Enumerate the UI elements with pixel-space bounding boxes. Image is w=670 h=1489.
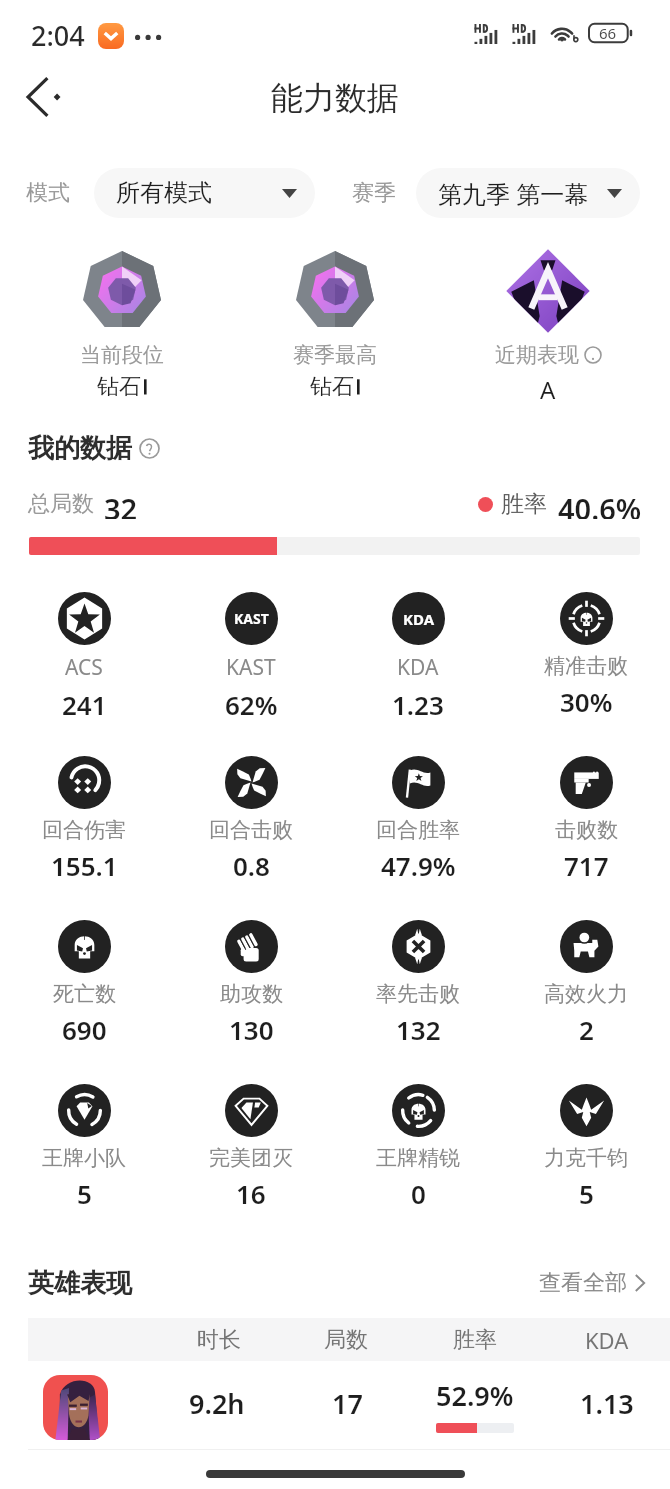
staticText: 16 xyxy=(236,1176,266,1211)
staticText: 查看全部 xyxy=(539,1269,627,1297)
staticText: 30% xyxy=(560,684,613,719)
staticText: 胜率 xyxy=(453,1326,497,1354)
staticText: 5 xyxy=(579,1176,594,1211)
staticText: 完美团灭 xyxy=(209,1145,293,1171)
staticText: 总局数 xyxy=(28,490,94,518)
staticText: 助攻数 xyxy=(220,981,283,1007)
staticText: 钻石 xyxy=(97,373,141,401)
staticText: 王牌小队 xyxy=(42,1145,126,1171)
staticText: 时长 xyxy=(197,1326,241,1354)
staticText: 1.23 xyxy=(392,687,444,722)
button[interactable]: 高效火力 xyxy=(503,920,669,1047)
staticText: 英雄表现 xyxy=(28,1267,132,1300)
button[interactable]: 助攻数 xyxy=(168,920,334,1047)
button[interactable]: 回合伤害 xyxy=(1,756,167,883)
button[interactable]: 所有模式 xyxy=(94,168,315,218)
button[interactable]: 王牌精锐 xyxy=(335,1084,501,1211)
staticText: 当前段位 xyxy=(80,342,164,368)
staticText: 0.8 xyxy=(233,848,270,883)
staticText: 力克千钧 xyxy=(544,1145,628,1171)
button[interactable]: 精准击败 xyxy=(503,592,669,719)
staticText: 精准击败 xyxy=(544,653,628,679)
staticText: 赛季最高 xyxy=(293,342,377,368)
button[interactable]: 完美团灭 xyxy=(168,1084,334,1211)
button[interactable]: 近期表现 xyxy=(458,248,638,406)
button[interactable]: 当前段位 xyxy=(32,248,212,401)
button[interactable]: 第九季 第一幕 xyxy=(416,168,640,218)
staticText: 66 xyxy=(599,23,617,43)
staticText: 40.6% xyxy=(558,489,642,519)
staticText: 钻石 xyxy=(310,373,354,401)
staticText: 回合击败 xyxy=(209,817,293,843)
button[interactable]: KDA xyxy=(335,592,501,722)
staticText: A xyxy=(540,373,556,406)
staticText: 死亡数 xyxy=(53,981,116,1007)
staticText: 5 xyxy=(77,1176,92,1211)
staticText: 62% xyxy=(225,687,278,722)
staticText: 241 xyxy=(62,687,107,722)
staticText: KAST xyxy=(226,653,276,682)
staticText: 回合胜率 xyxy=(376,817,460,843)
button[interactable]: 查看全部 xyxy=(539,1269,646,1297)
staticText: 模式 xyxy=(26,179,70,207)
staticText: 王牌精锐 xyxy=(376,1145,460,1171)
button[interactable]: 回合胜率 xyxy=(335,756,501,883)
staticText: 717 xyxy=(564,848,609,883)
button[interactable]: 力克千钧 xyxy=(503,1084,669,1211)
button[interactable]: 赛季最高 xyxy=(245,248,425,401)
staticText: 52.9% xyxy=(436,1377,514,1414)
staticText: 回合伤害 xyxy=(42,817,126,843)
staticText: 32 xyxy=(104,489,138,519)
button[interactable]: ACS xyxy=(1,592,167,722)
staticText: 近期表现 xyxy=(495,342,579,368)
staticText: KDA xyxy=(397,653,439,682)
staticText: KDA xyxy=(403,609,435,629)
staticText: KAST xyxy=(234,609,269,628)
staticText: 高效火力 xyxy=(544,981,628,1007)
button[interactable]: 王牌小队 xyxy=(1,1084,167,1211)
staticText: ACS xyxy=(65,653,103,682)
button[interactable]: 击败数 xyxy=(503,756,669,883)
button[interactable]: 率先击败 xyxy=(335,920,501,1047)
button[interactable]: Back xyxy=(14,68,72,126)
staticText: 第九季 第一幕 xyxy=(438,177,607,210)
staticText: 9.2h xyxy=(189,1385,245,1422)
staticText: 2:04 xyxy=(31,17,85,54)
button[interactable]: 死亡数 xyxy=(1,920,167,1047)
staticText: 我的数据 xyxy=(28,432,132,465)
staticText: 47.9% xyxy=(381,848,456,883)
staticText: 132 xyxy=(396,1012,441,1047)
staticText: 155.1 xyxy=(51,848,118,883)
staticText: 1.13 xyxy=(580,1385,634,1422)
staticText: 690 xyxy=(62,1012,107,1047)
staticText: 赛季 xyxy=(352,179,396,207)
staticText: 所有模式 xyxy=(116,178,282,208)
staticText: 2 xyxy=(579,1012,594,1047)
staticText: 击败数 xyxy=(555,817,618,843)
staticText: 130 xyxy=(229,1012,274,1047)
button[interactable]: 回合击败 xyxy=(168,756,334,883)
staticText: 胜率 xyxy=(501,490,547,519)
staticText: 能力数据 xyxy=(271,78,399,118)
staticText: 率先击败 xyxy=(376,981,460,1007)
button[interactable]: KAST xyxy=(168,592,334,722)
staticText: KDA xyxy=(585,1325,629,1355)
button[interactable] xyxy=(43,1375,108,1440)
staticText: 0 xyxy=(411,1176,426,1211)
staticText: 局数 xyxy=(324,1326,368,1354)
staticText: 17 xyxy=(332,1385,363,1422)
